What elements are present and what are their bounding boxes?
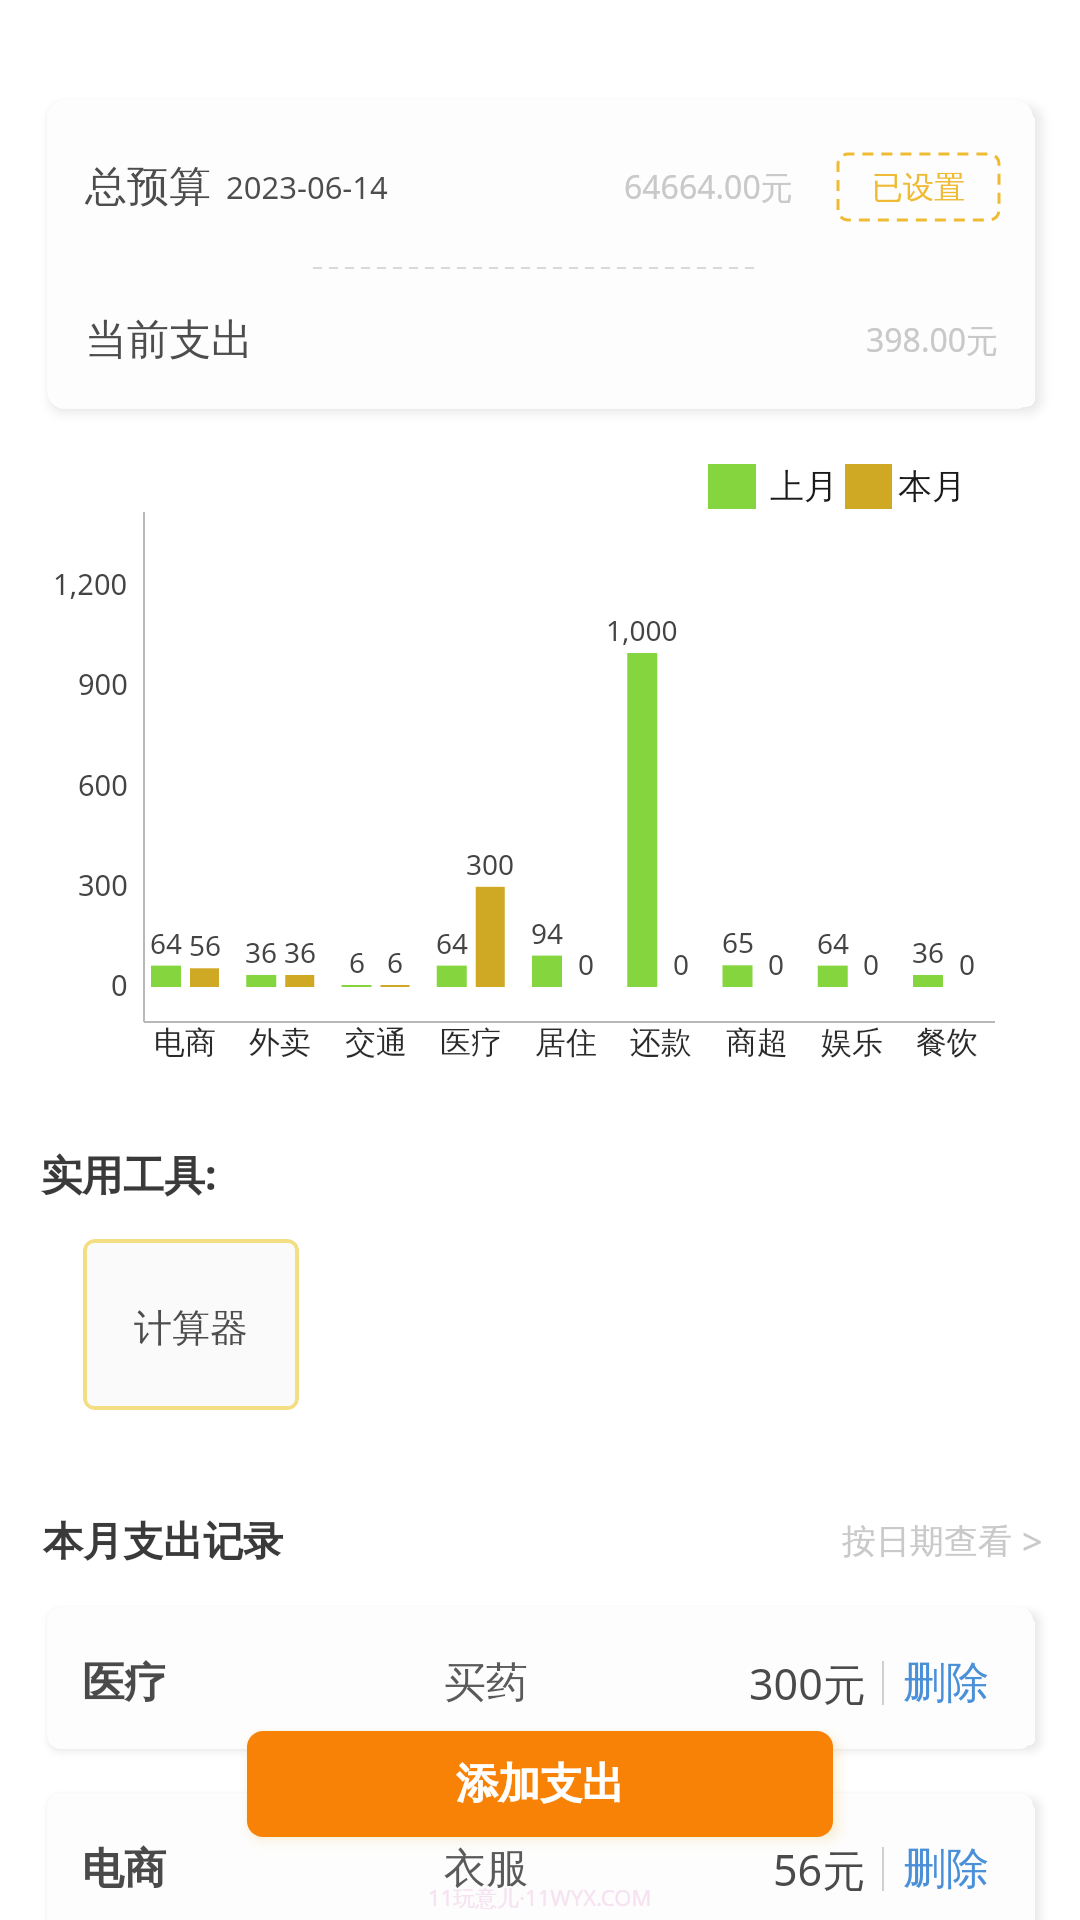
- staticText: 商超: [726, 1023, 788, 1062]
- staticText: 36: [284, 933, 317, 971]
- staticText: 本月支出记录: [43, 1516, 283, 1566]
- staticText: 0: [768, 945, 785, 983]
- staticText: 1,000: [606, 611, 678, 649]
- staticText: 64: [817, 924, 850, 962]
- staticText: 36: [912, 933, 945, 971]
- staticText: 65: [722, 923, 755, 961]
- staticText: 已设置: [872, 168, 965, 207]
- staticText: 买药: [444, 1657, 528, 1710]
- staticText: 300元: [749, 1654, 866, 1713]
- staticText: 上月: [770, 465, 838, 508]
- staticText: 6: [349, 943, 366, 981]
- button[interactable]: 电商: [47, 1793, 1033, 1920]
- staticText: 0: [111, 965, 128, 1004]
- staticText: 0: [863, 945, 880, 983]
- staticText: >: [1022, 1517, 1043, 1566]
- staticText: 56: [189, 926, 222, 964]
- staticText: 300: [78, 865, 128, 904]
- staticText: 总预算: [85, 161, 211, 214]
- staticText: 2023-06-14: [226, 166, 388, 208]
- staticText: 医疗: [82, 1657, 166, 1710]
- button[interactable]: 按日期查看: [842, 1517, 1043, 1566]
- staticText: 娱乐: [821, 1023, 883, 1062]
- staticText: 删除: [903, 1656, 989, 1710]
- staticText: 1,200: [53, 564, 128, 603]
- staticText: 外卖: [249, 1023, 311, 1062]
- staticText: 按日期查看: [842, 1520, 1012, 1563]
- staticText: 本月: [898, 465, 966, 508]
- staticText: 64: [436, 924, 469, 962]
- button[interactable]: 删除: [903, 1838, 989, 1900]
- staticText: 600: [78, 765, 128, 804]
- staticText: 6: [387, 943, 404, 981]
- staticText: 餐饮: [916, 1023, 978, 1062]
- staticText: 计算器: [134, 1304, 248, 1352]
- staticText: 0: [673, 945, 690, 983]
- staticText: 398.00元: [866, 318, 999, 362]
- staticText: 0: [578, 945, 595, 983]
- button[interactable]: 已设置 预算: [838, 154, 999, 220]
- staticText: 居住: [535, 1023, 597, 1062]
- button[interactable]: 计算器: [83, 1239, 299, 1410]
- staticText: 实用工具:: [41, 1146, 217, 1202]
- staticText: 交通: [345, 1023, 407, 1062]
- staticText: 900: [78, 664, 128, 703]
- staticText: 医疗: [440, 1023, 502, 1062]
- staticText: 当前支出: [85, 314, 253, 367]
- staticText: 11玩意儿·11WYX.COM: [428, 1882, 652, 1912]
- button[interactable]: 添加支出: [247, 1731, 833, 1837]
- staticText: 删除: [903, 1842, 989, 1896]
- staticText: 电商: [82, 1843, 166, 1896]
- staticText: 还款: [630, 1023, 692, 1062]
- staticText: 电商: [154, 1023, 216, 1062]
- staticText: 94: [531, 914, 564, 952]
- staticText: 64: [150, 924, 183, 962]
- staticText: 添加支出: [456, 1758, 624, 1811]
- staticText: 56元: [773, 1840, 866, 1899]
- button[interactable]: 删除: [903, 1652, 989, 1714]
- button[interactable]: 上月: [708, 463, 966, 509]
- button[interactable]: 医疗: [47, 1607, 1033, 1749]
- staticText: 0: [959, 945, 976, 983]
- staticText: 300: [466, 845, 515, 883]
- staticText: 64664.00元: [624, 165, 793, 209]
- staticText: 衣服: [444, 1843, 528, 1896]
- staticText: 36: [245, 933, 278, 971]
